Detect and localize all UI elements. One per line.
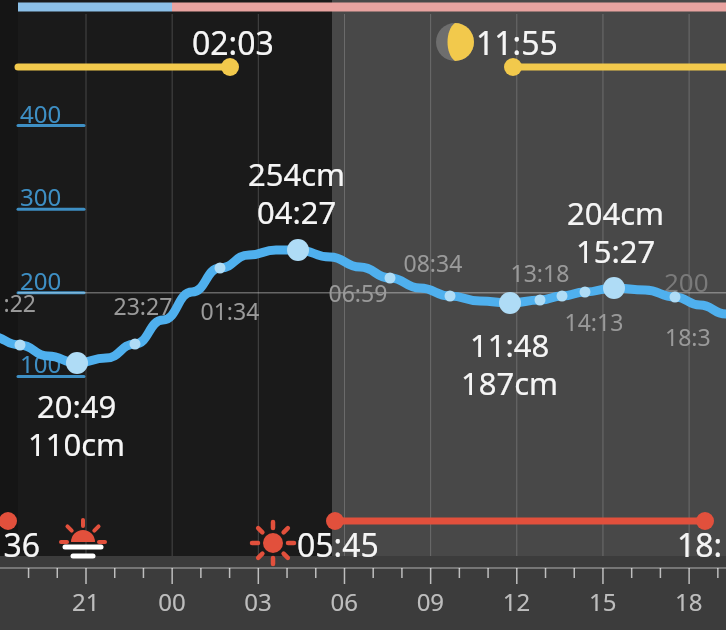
- button[interactable]: Tide chart: [0, 0, 726, 630]
